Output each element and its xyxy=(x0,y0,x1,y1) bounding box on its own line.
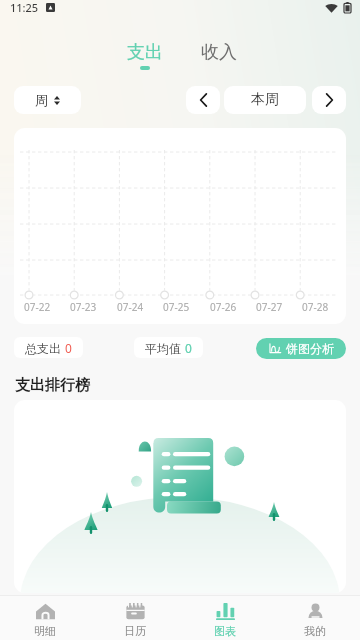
staticText: 07-25 xyxy=(163,300,190,314)
button[interactable]: 饼图分析 xyxy=(256,338,346,359)
staticText: 11:25 xyxy=(10,0,39,15)
staticText: 平均值 xyxy=(145,340,185,356)
button[interactable]: 周 xyxy=(14,86,81,114)
staticText: 07-22 xyxy=(24,300,51,314)
staticText: 明细 xyxy=(34,624,56,638)
button[interactable]: 图表 xyxy=(180,596,270,638)
staticText: 饼图分析 xyxy=(286,341,334,356)
staticText: 0 xyxy=(65,340,72,356)
button[interactable]: 明细 xyxy=(0,596,90,638)
staticText: 支出排行榜 xyxy=(15,376,90,395)
button[interactable]: 本周 xyxy=(224,86,306,114)
staticText: 07-23 xyxy=(70,300,97,314)
button[interactable]: 支出 xyxy=(117,40,173,71)
staticText: 我的 xyxy=(304,624,326,638)
button[interactable]: Next week xyxy=(312,86,346,114)
button[interactable]: 日历 xyxy=(90,596,180,638)
staticText: 支出 xyxy=(127,41,163,64)
staticText: 07-27 xyxy=(256,300,283,314)
button[interactable]: 我的 xyxy=(270,596,360,638)
staticText: 收入 xyxy=(201,41,237,64)
staticText: 图表 xyxy=(214,624,236,638)
staticText: 总支出 xyxy=(25,340,65,356)
button[interactable]: Previous week xyxy=(186,86,220,114)
button[interactable]: 平均值 xyxy=(134,337,203,358)
staticText: 07-24 xyxy=(117,300,144,314)
button[interactable]: 总支出 xyxy=(14,337,83,358)
staticText: 本周 xyxy=(251,91,279,109)
staticText: 07-26 xyxy=(210,300,237,314)
staticText: 周 xyxy=(35,92,48,108)
staticText: 日历 xyxy=(124,624,146,638)
staticText: 07-28 xyxy=(302,300,329,314)
staticText: 0 xyxy=(185,340,192,356)
button[interactable]: 收入 xyxy=(191,40,247,65)
